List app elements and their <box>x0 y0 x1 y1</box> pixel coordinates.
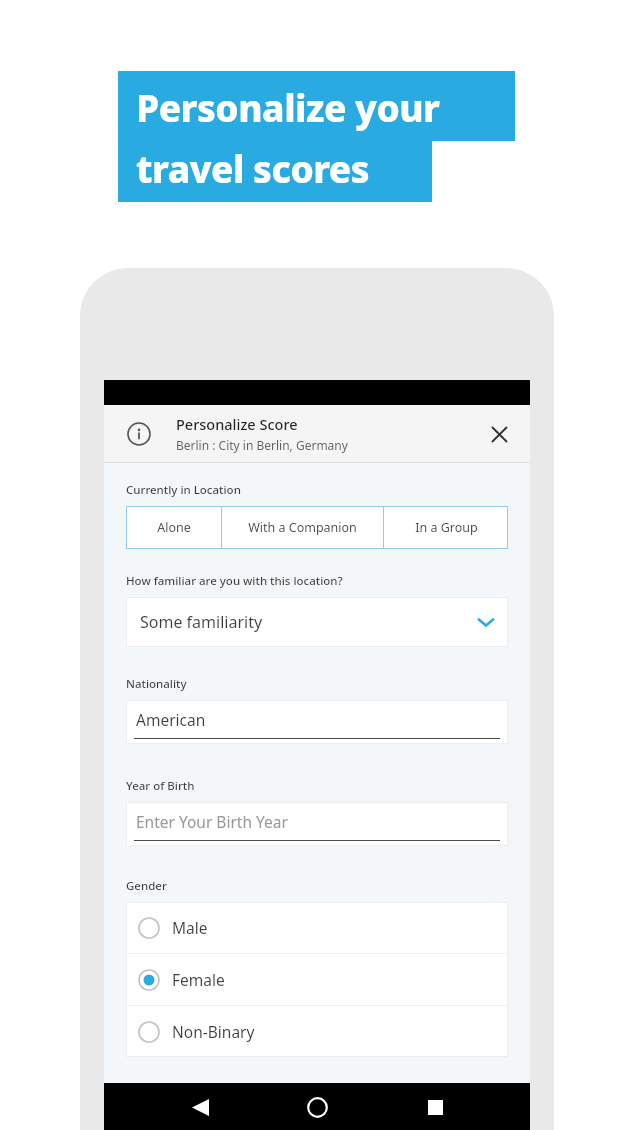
staticText: American <box>136 709 206 730</box>
staticText: Enter Your Birth Year <box>136 811 288 832</box>
button[interactable]: Alone <box>126 506 221 549</box>
staticText: Gender <box>126 878 167 894</box>
staticText: Currently in Location <box>126 482 241 498</box>
button[interactable]: With a Companion <box>222 506 383 549</box>
button[interactable]: Recent apps <box>413 1085 457 1129</box>
staticText: Nationality <box>126 676 187 692</box>
button[interactable]: Some familiarity <box>126 597 508 647</box>
button[interactable]: Non-Binary <box>126 1006 508 1057</box>
button[interactable]: Close <box>482 417 516 451</box>
button[interactable]: Information <box>122 417 156 451</box>
button[interactable]: Male <box>126 902 508 953</box>
button[interactable]: Home <box>295 1085 339 1129</box>
staticText: Alone <box>157 519 191 536</box>
staticText: Some familiarity <box>140 611 263 633</box>
staticText: Year of Birth <box>126 778 195 794</box>
staticText: Personalize Score <box>176 414 298 434</box>
staticText: Male <box>172 917 208 938</box>
staticText: Female <box>172 969 225 990</box>
button[interactable]: In a Group <box>384 506 508 549</box>
button[interactable]: Enter Your Birth Year <box>126 802 508 846</box>
staticText: With a Companion <box>248 519 357 536</box>
staticText: How familiar are you with this location? <box>126 573 343 589</box>
staticText: travel scores <box>136 143 370 193</box>
button[interactable]: Back <box>178 1085 222 1129</box>
button[interactable]: American <box>126 700 508 744</box>
staticText: Non-Binary <box>172 1021 255 1042</box>
staticText: Berlin : City in Berlin, Germany <box>176 437 348 453</box>
staticText: In a Group <box>415 519 478 536</box>
staticText: Personalize your <box>136 82 440 132</box>
button[interactable]: Female <box>126 954 508 1005</box>
